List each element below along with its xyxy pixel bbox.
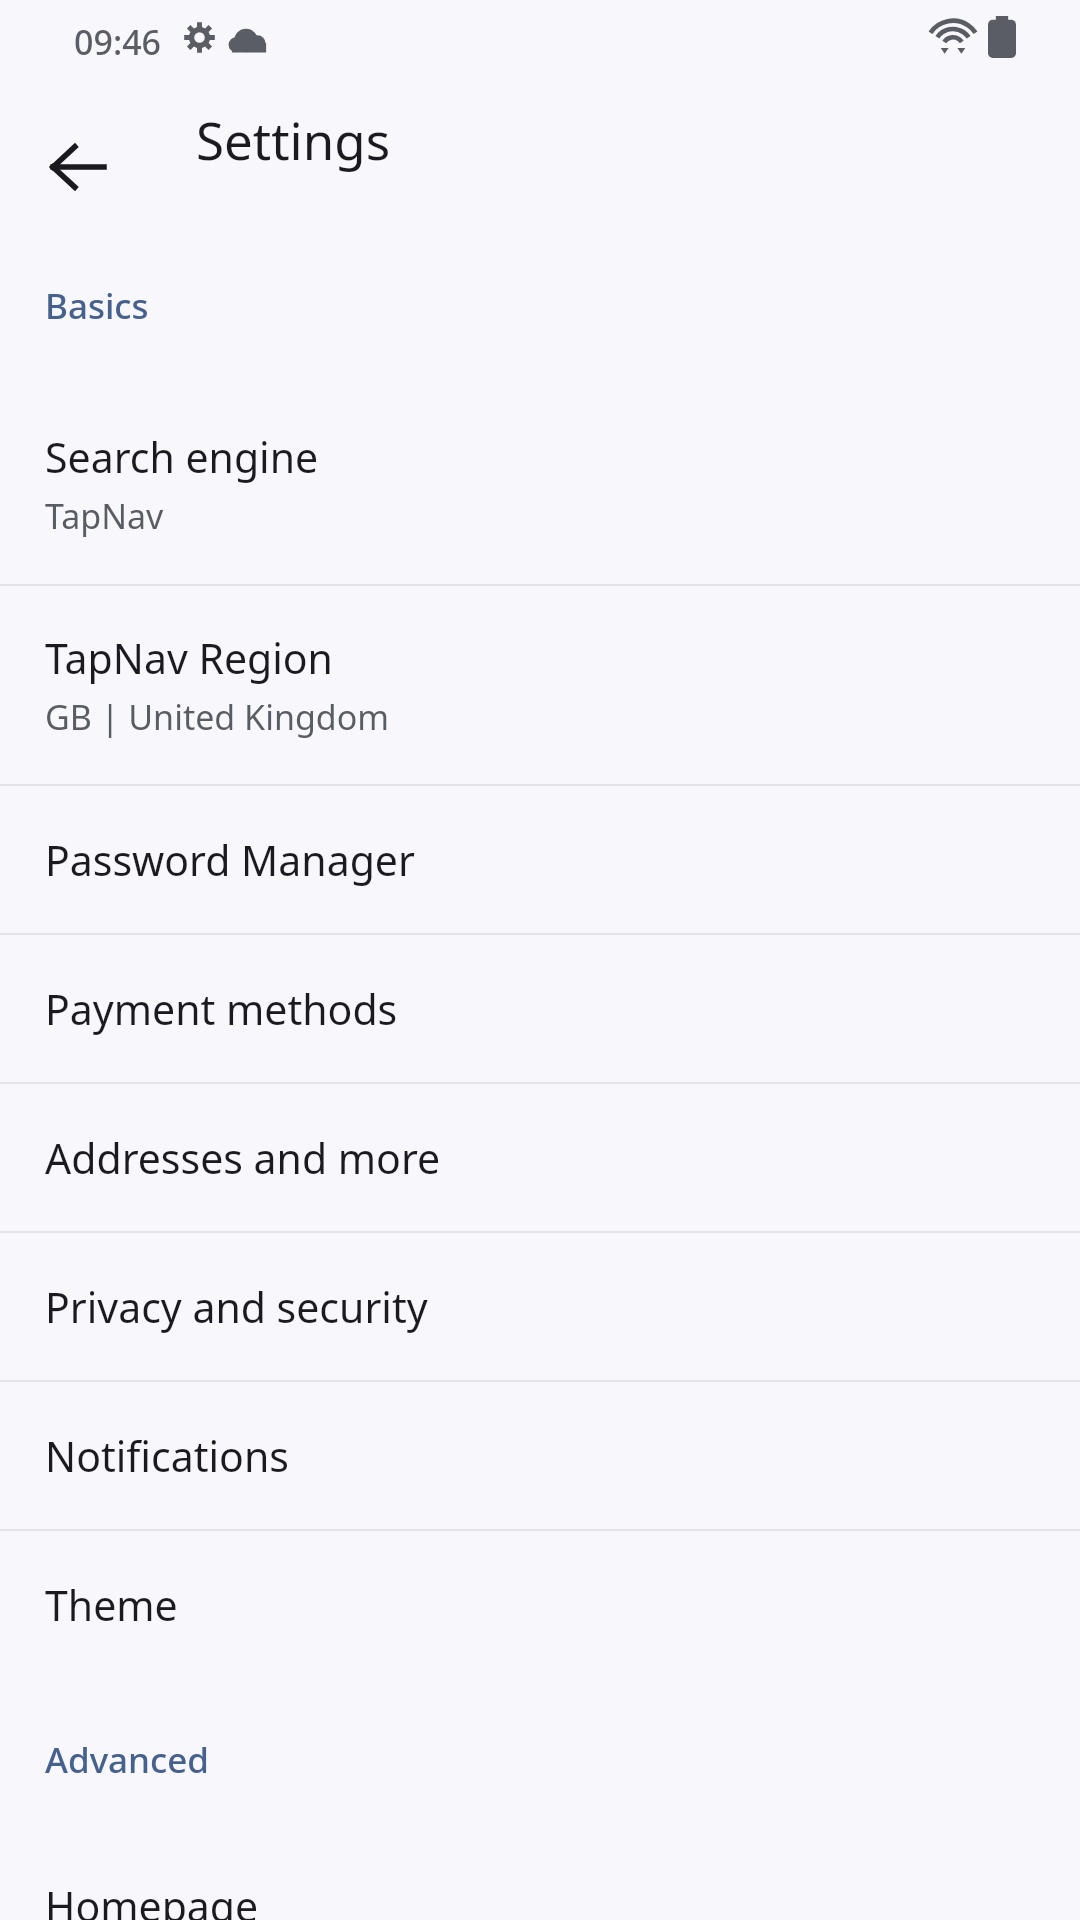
button[interactable]: Theme xyxy=(0,1531,1080,1678)
button[interactable]: Notifications xyxy=(0,1382,1080,1529)
staticText: TapNav Region xyxy=(45,630,333,686)
staticText: Homepage xyxy=(45,1878,259,1920)
staticText: Basics xyxy=(45,282,149,330)
staticText: Search engine xyxy=(45,429,319,485)
button[interactable]: Addresses and more xyxy=(0,1084,1080,1231)
button[interactable]: Homepage xyxy=(0,1832,1080,1920)
staticText: Password Manager xyxy=(45,832,415,888)
button[interactable]: Password Manager xyxy=(0,786,1080,933)
staticText: Notifications xyxy=(45,1428,289,1484)
staticText: TapNav xyxy=(45,493,164,539)
staticText: 09:46 xyxy=(74,19,162,65)
button[interactable]: Search engine xyxy=(0,384,1080,584)
button[interactable]: Payment methods xyxy=(0,935,1080,1082)
button[interactable]: TapNav Region xyxy=(0,586,1080,784)
staticText: GB | United Kingdom xyxy=(45,694,390,740)
button[interactable]: Back xyxy=(18,107,138,227)
staticText: Payment methods xyxy=(45,981,398,1037)
staticText: Privacy and security xyxy=(45,1279,428,1335)
staticText: Settings xyxy=(196,105,391,174)
staticText: Addresses and more xyxy=(45,1130,441,1186)
button[interactable]: Privacy and security xyxy=(0,1233,1080,1380)
staticText: Theme xyxy=(45,1577,178,1633)
staticText: Advanced xyxy=(45,1736,210,1784)
